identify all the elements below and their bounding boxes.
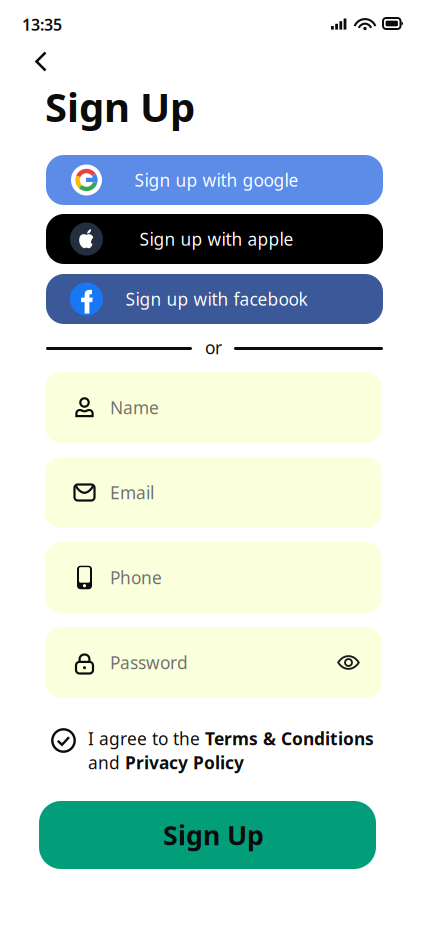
staticText: Email (110, 481, 154, 504)
staticText: Password (110, 651, 188, 674)
button[interactable]: I agree to the (51, 727, 374, 774)
staticText: Name (110, 396, 159, 419)
button[interactable]: Show password (330, 645, 367, 680)
staticText: Sign Up (163, 817, 264, 853)
staticText: Privacy Policy (125, 751, 244, 774)
staticText: I agree to the (88, 727, 205, 750)
staticText: Sign up with google (134, 168, 298, 191)
staticText: Sign up with apple (139, 227, 293, 250)
staticText: or (205, 336, 222, 359)
staticText: and (88, 751, 125, 774)
staticText: Phone (110, 566, 162, 589)
staticText: Sign Up (45, 80, 195, 133)
staticText: 13:35 (22, 14, 62, 35)
button[interactable]: Sign up with google (46, 155, 383, 205)
button[interactable]: Sign up with facebook (46, 274, 383, 324)
staticText: Terms & Conditions (205, 727, 374, 750)
staticText: Sign up with facebook (125, 287, 307, 310)
button[interactable]: Sign Up (39, 801, 376, 869)
button[interactable]: Back (22, 44, 60, 79)
button[interactable]: Sign up with apple (46, 214, 383, 264)
